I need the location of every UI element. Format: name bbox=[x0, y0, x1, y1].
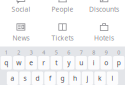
staticText: News bbox=[12, 34, 29, 42]
staticText: a bbox=[10, 74, 14, 83]
staticText: q bbox=[4, 58, 8, 67]
button[interactable]: Hotels bbox=[83, 21, 125, 43]
button[interactable]: e bbox=[26, 56, 37, 69]
staticText: t bbox=[55, 58, 57, 67]
button[interactable]: Social bbox=[0, 3, 42, 13]
staticText: 3 bbox=[30, 49, 33, 56]
staticText: 2 bbox=[17, 49, 20, 56]
staticText: 8 bbox=[92, 49, 95, 56]
staticText: p bbox=[117, 58, 121, 67]
staticText: r bbox=[42, 58, 45, 67]
staticText: 5 bbox=[55, 49, 58, 56]
button[interactable]: l bbox=[107, 71, 118, 85]
staticText: s bbox=[23, 74, 26, 83]
staticText: u bbox=[79, 58, 83, 67]
staticText: People bbox=[51, 5, 73, 13]
button[interactable]: w bbox=[13, 56, 24, 69]
staticText: Social bbox=[11, 5, 30, 13]
button[interactable]: o bbox=[101, 56, 112, 69]
staticText: 7 bbox=[80, 49, 83, 56]
button[interactable]: News bbox=[0, 21, 42, 43]
staticText: j bbox=[86, 74, 88, 83]
button[interactable]: a bbox=[7, 71, 18, 85]
button[interactable]: d bbox=[32, 71, 43, 85]
button[interactable]: People bbox=[42, 3, 83, 13]
staticText: l bbox=[111, 74, 113, 83]
staticText: o bbox=[104, 58, 108, 67]
staticText: d bbox=[35, 74, 39, 83]
staticText: f bbox=[49, 74, 51, 83]
staticText: g bbox=[60, 74, 64, 83]
button[interactable]: k bbox=[94, 71, 106, 85]
button[interactable]: Tickets bbox=[42, 21, 83, 43]
button[interactable]: i bbox=[88, 56, 99, 69]
staticText: w bbox=[16, 58, 21, 67]
button[interactable]: p bbox=[113, 56, 124, 69]
staticText: i bbox=[93, 58, 95, 67]
staticText: h bbox=[73, 74, 77, 83]
button[interactable]: j bbox=[82, 71, 93, 85]
button[interactable]: t bbox=[51, 56, 62, 69]
staticText: y bbox=[67, 58, 70, 67]
staticText: Discounts bbox=[89, 5, 119, 13]
button[interactable]: g bbox=[57, 71, 68, 85]
button[interactable]: u bbox=[76, 56, 87, 69]
button[interactable]: y bbox=[63, 56, 74, 69]
button[interactable]: f bbox=[44, 71, 56, 85]
staticText: 9 bbox=[105, 49, 108, 56]
button[interactable]: r bbox=[38, 56, 49, 69]
button[interactable]: Discounts bbox=[83, 3, 125, 13]
staticText: k bbox=[98, 74, 102, 83]
staticText: Tickets bbox=[51, 34, 73, 42]
staticText: 4 bbox=[42, 49, 45, 56]
staticText: e bbox=[29, 58, 33, 67]
button[interactable]: q bbox=[1, 56, 12, 69]
staticText: Hotels bbox=[94, 34, 114, 42]
button[interactable]: s bbox=[19, 71, 31, 85]
staticText: 6 bbox=[67, 49, 70, 56]
staticText: 0 bbox=[117, 49, 120, 56]
button[interactable]: h bbox=[69, 71, 81, 85]
staticText: 1 bbox=[5, 49, 8, 56]
